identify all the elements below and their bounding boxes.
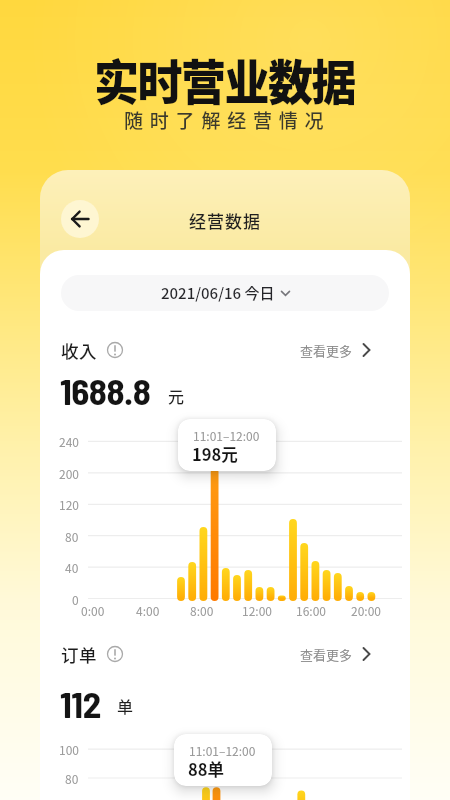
staticText: 112 [60, 681, 101, 725]
staticText: 12:00 [242, 602, 272, 619]
staticText: 80 [65, 528, 79, 545]
staticText: 40 [65, 559, 79, 576]
staticText: 1688.8 [60, 368, 151, 412]
staticText: 随时了解经营情况 [124, 106, 331, 134]
staticText: 查看更多 [300, 645, 353, 664]
staticText: 8:00 [190, 602, 214, 619]
staticText: 2021/06/16 今日 [161, 282, 275, 304]
staticText: 120 [59, 496, 79, 513]
staticText: 20:00 [351, 602, 381, 619]
staticText: 240 [59, 433, 79, 450]
staticText: 0:00 [81, 602, 105, 619]
staticText: 查看更多 [300, 341, 353, 360]
staticText: 80 [65, 770, 79, 787]
staticText: 4:00 [136, 602, 160, 619]
staticText: 100 [59, 741, 79, 758]
staticText: 单 [117, 694, 134, 717]
staticText: 实时营业数据 [94, 45, 356, 114]
staticText: 198元 [192, 442, 238, 466]
staticText: 元 [168, 384, 185, 407]
staticText: 11:01–12:00 [189, 742, 256, 759]
staticText: 16:00 [296, 602, 326, 619]
staticText: 订单 [61, 642, 97, 667]
staticText: 收入 [61, 338, 97, 363]
staticText: 88单 [188, 757, 224, 781]
staticText: 11:01–12:00 [193, 427, 260, 444]
staticText: 经营数据 [189, 208, 261, 233]
staticText: 200 [59, 465, 79, 482]
staticText: 0 [72, 591, 79, 608]
